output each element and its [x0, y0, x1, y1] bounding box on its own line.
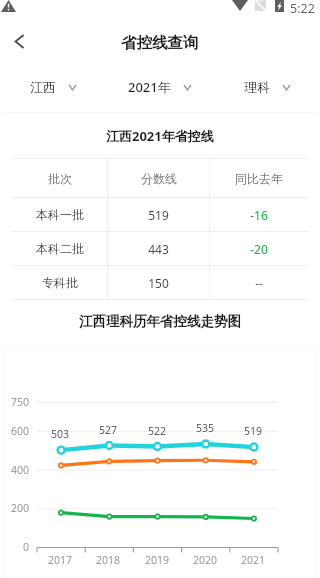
staticText: 分数线 — [141, 171, 177, 186]
staticText: 专科批 — [42, 275, 78, 290]
staticText: 理科 — [244, 79, 270, 95]
staticText: 江西理科历年省控线走势图 — [79, 313, 241, 330]
button[interactable]: 江西 — [0, 62, 106, 112]
staticText: 200 — [11, 501, 30, 515]
staticText: 150 — [148, 275, 169, 291]
staticText: 503 — [51, 427, 70, 441]
staticText: 443 — [148, 241, 169, 257]
staticText: 750 — [11, 395, 30, 409]
staticText: 2018 — [96, 553, 121, 567]
staticText: 本科一批 — [36, 207, 84, 222]
staticText: 400 — [11, 463, 30, 477]
staticText: 2017 — [48, 553, 73, 567]
staticText: 2021年 — [128, 78, 171, 96]
staticText: 江西2021年省控线 — [106, 127, 214, 145]
staticText: -16 — [250, 207, 268, 223]
button[interactable]: Back — [0, 22, 38, 60]
staticText: 519 — [244, 424, 263, 438]
button[interactable]: 理科 — [213, 62, 320, 112]
staticText: 0 — [23, 540, 30, 554]
staticText: 2019 — [145, 553, 170, 567]
button[interactable]: 2021年 — [106, 62, 213, 112]
staticText: 江西 — [30, 79, 56, 95]
staticText: 527 — [99, 423, 118, 437]
staticText: -- — [255, 275, 263, 291]
staticText: -20 — [250, 241, 268, 257]
staticText: 同比去年 — [235, 171, 283, 186]
staticText: 535 — [196, 421, 215, 435]
staticText: 2020 — [193, 553, 218, 567]
staticText: 522 — [148, 424, 167, 438]
staticText: 2021 — [241, 553, 266, 567]
staticText: 批次 — [48, 171, 72, 186]
staticText: 519 — [148, 207, 169, 223]
staticText: 本科二批 — [36, 241, 84, 256]
staticText: 600 — [11, 424, 30, 438]
staticText: 省控线查询 — [121, 33, 199, 53]
staticText: 5:22 — [290, 0, 315, 17]
